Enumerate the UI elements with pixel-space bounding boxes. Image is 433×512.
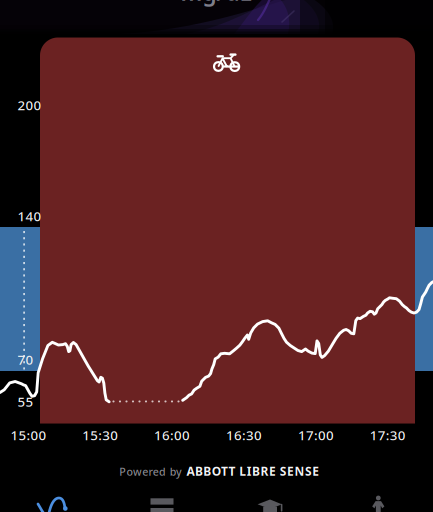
staticText: 15:00 (10, 426, 46, 444)
button[interactable]: Profile (325, 486, 433, 512)
button[interactable]: Logbook (108, 486, 216, 512)
staticText: ABBOTT LIBRE SENSE (186, 463, 319, 479)
staticText: 16:00 (154, 426, 190, 444)
staticText: 16:30 (226, 426, 262, 444)
staticText: 15:30 (82, 426, 118, 444)
staticText: 140 (17, 207, 41, 225)
staticText: Powered by (119, 464, 182, 479)
staticText: 200 (17, 96, 41, 114)
staticText: 17:30 (370, 426, 406, 444)
button[interactable]: Learn (216, 486, 325, 512)
staticText: 17:00 (298, 426, 334, 444)
staticText: mg/dL (180, 0, 251, 7)
staticText: 55 (17, 393, 33, 410)
staticText: 70 (17, 351, 33, 368)
button[interactable]: Glucose (0, 486, 108, 512)
